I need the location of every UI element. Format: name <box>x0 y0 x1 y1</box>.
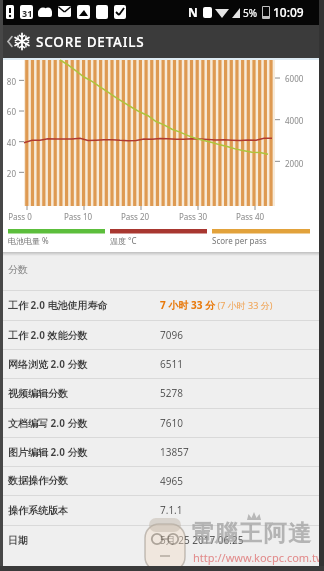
staticText: 工作 2.0 电池使用寿命 <box>8 298 158 312</box>
button[interactable]: 数据操作分数 <box>0 466 324 495</box>
button[interactable]: 文档编写 2.0 分数 <box>0 408 324 437</box>
staticText: Pass 10 <box>58 211 98 222</box>
staticText: 日期 <box>8 534 158 547</box>
staticText: 7 小时 33 分 (7 小时 33 分) <box>160 298 273 312</box>
staticText: 操作系统版本 <box>8 504 158 517</box>
staticText: 分数 <box>8 263 28 276</box>
staticText: 10:09 <box>273 4 304 20</box>
staticText: 温度 °C <box>110 235 137 246</box>
button[interactable]: 视频编辑分数 <box>0 378 324 408</box>
staticText: 4965 <box>160 474 183 488</box>
button[interactable]: 日期 <box>0 525 324 555</box>
staticText: 2000 <box>285 158 304 169</box>
staticText: 图片编辑 2.0 分数 <box>8 445 158 459</box>
staticText: 電腦王阿達 <box>190 519 313 548</box>
staticText: 文档编写 2.0 分数 <box>8 416 158 430</box>
staticText: Score per pass <box>212 235 267 246</box>
staticText: Pass 40 <box>230 211 270 222</box>
staticText: 视频编辑分数 <box>8 387 158 400</box>
staticText: 40 <box>0 137 16 148</box>
staticText: http://www.kocpc.com.tw <box>193 550 324 565</box>
button[interactable]: 网络浏览 2.0 分数 <box>0 349 324 378</box>
staticText: 5278 <box>160 386 183 400</box>
button[interactable]: SCORE DETAILS <box>0 25 324 58</box>
staticText: Pass 30 <box>173 211 213 222</box>
staticText: 6000 <box>285 73 304 84</box>
staticText: 7.1.1 <box>160 503 183 517</box>
staticText: 7096 <box>160 328 183 342</box>
staticText: 80 <box>0 76 16 87</box>
button[interactable]: 工作 2.0 电池使用寿命 <box>0 290 324 320</box>
staticText: 工作 2.0 效能分数 <box>8 328 158 342</box>
button[interactable]: 图片编辑 2.0 分数 <box>0 437 324 466</box>
staticText: 网络浏览 2.0 分数 <box>8 357 158 371</box>
staticText: 数据操作分数 <box>8 474 158 487</box>
button[interactable]: 操作系统版本 <box>0 495 324 525</box>
staticText: Pass 20 <box>115 211 155 222</box>
staticText: 20 <box>0 168 16 179</box>
staticText: SCORE DETAILS <box>36 33 145 51</box>
staticText: Pass 0 <box>0 211 40 222</box>
staticText: 电池电量 % <box>8 235 49 246</box>
staticText: 13857 <box>160 445 189 459</box>
staticText: N <box>188 4 198 20</box>
staticText: 31 <box>22 7 33 19</box>
staticText: 60 <box>0 106 16 117</box>
staticText: 4000 <box>285 115 304 126</box>
staticText: 6511 <box>160 357 183 371</box>
staticText: 5% <box>243 6 258 20</box>
button[interactable]: 工作 2.0 效能分数 <box>0 320 324 349</box>
staticText: 5月 25 2017 06.25 <box>160 533 244 547</box>
staticText: 7610 <box>160 416 183 430</box>
